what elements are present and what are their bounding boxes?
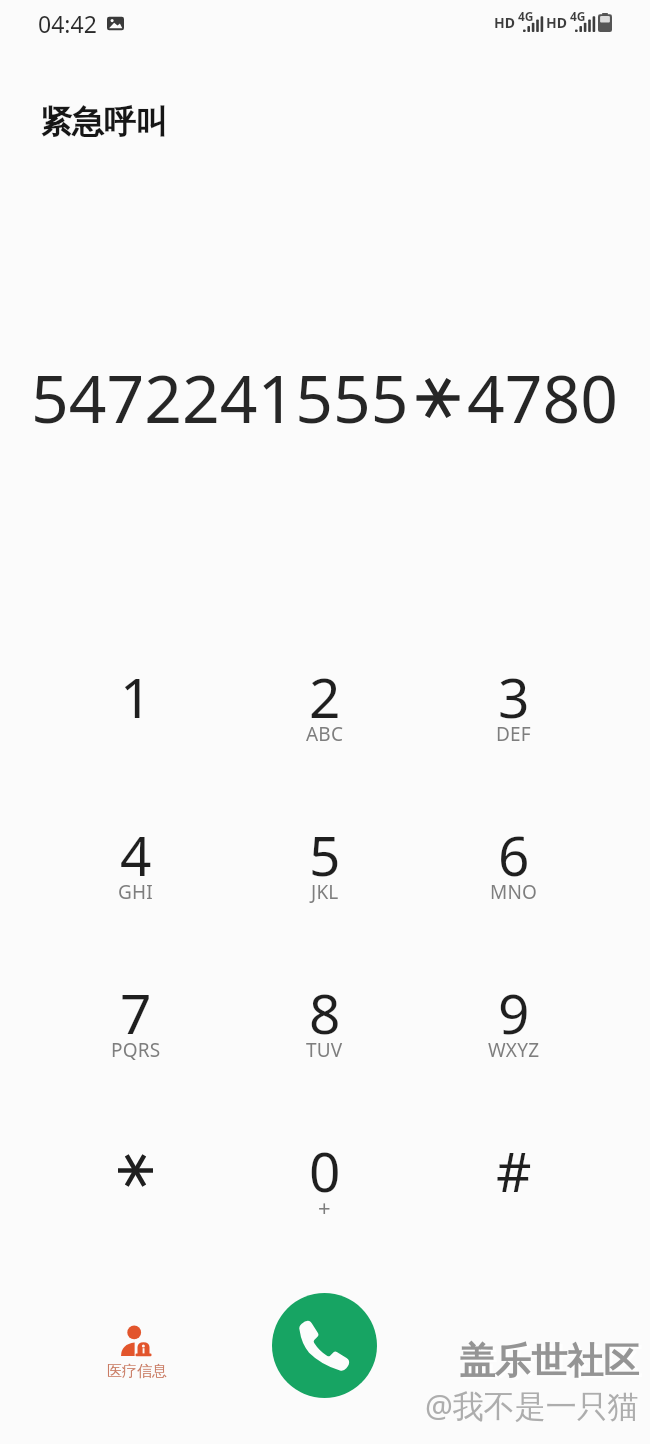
staticText: PQRS: [111, 1037, 161, 1063]
button[interactable]: Key #: [419, 1133, 608, 1293]
staticText: 4780: [467, 352, 619, 442]
staticText: 6: [498, 817, 530, 892]
button[interactable]: Key 4: [41, 817, 230, 975]
staticText: 5: [309, 817, 341, 892]
button[interactable]: Key 6: [419, 817, 608, 975]
button[interactable]: Key 9: [419, 975, 608, 1133]
button[interactable]: Key 2: [230, 659, 419, 817]
button[interactable]: Key 0: [230, 1133, 419, 1293]
staticText: HD: [494, 13, 515, 32]
staticText: WXYZ: [488, 1037, 540, 1063]
staticText: 9: [498, 975, 530, 1050]
button[interactable]: Call: [272, 1293, 377, 1398]
staticText: 0: [309, 1133, 341, 1208]
staticText: 04:42: [38, 8, 97, 39]
button[interactable]: Key 8: [230, 975, 419, 1133]
button[interactable]: Key ✱: [41, 1133, 230, 1293]
staticText: 盖乐世社区: [459, 1338, 639, 1383]
staticText: TUV: [306, 1037, 343, 1063]
staticText: JKL: [311, 879, 339, 905]
button[interactable]: 医疗信息: [106, 1325, 167, 1381]
staticText: GHI: [118, 879, 153, 905]
staticText: 4: [120, 817, 152, 892]
button[interactable]: Key 1: [41, 659, 230, 817]
staticText: 4G: [518, 8, 534, 24]
staticText: @我不是一只猫: [425, 1384, 639, 1426]
staticText: 8: [309, 975, 341, 1050]
staticText: #: [496, 1133, 532, 1208]
button[interactable]: Key 7: [41, 975, 230, 1133]
staticText: 2: [309, 659, 341, 734]
staticText: 紧急呼叫: [40, 102, 168, 142]
staticText: 盖乐世社区: [462, 1340, 642, 1385]
staticText: 5472241555: [31, 352, 409, 442]
other: star: [108, 1133, 163, 1203]
staticText: MNO: [490, 879, 538, 905]
staticText: DEF: [496, 721, 531, 747]
staticText: 7: [120, 975, 152, 1050]
button[interactable]: Key 5: [230, 817, 419, 975]
staticText: ABC: [306, 721, 344, 747]
staticText: 4G: [570, 8, 586, 24]
staticText: HD: [546, 13, 567, 32]
staticText: 医疗信息: [107, 1362, 167, 1381]
staticText: 3: [498, 659, 530, 734]
staticText: 1: [120, 659, 152, 734]
button[interactable]: Key 3: [419, 659, 608, 817]
staticText: +: [318, 1192, 331, 1222]
